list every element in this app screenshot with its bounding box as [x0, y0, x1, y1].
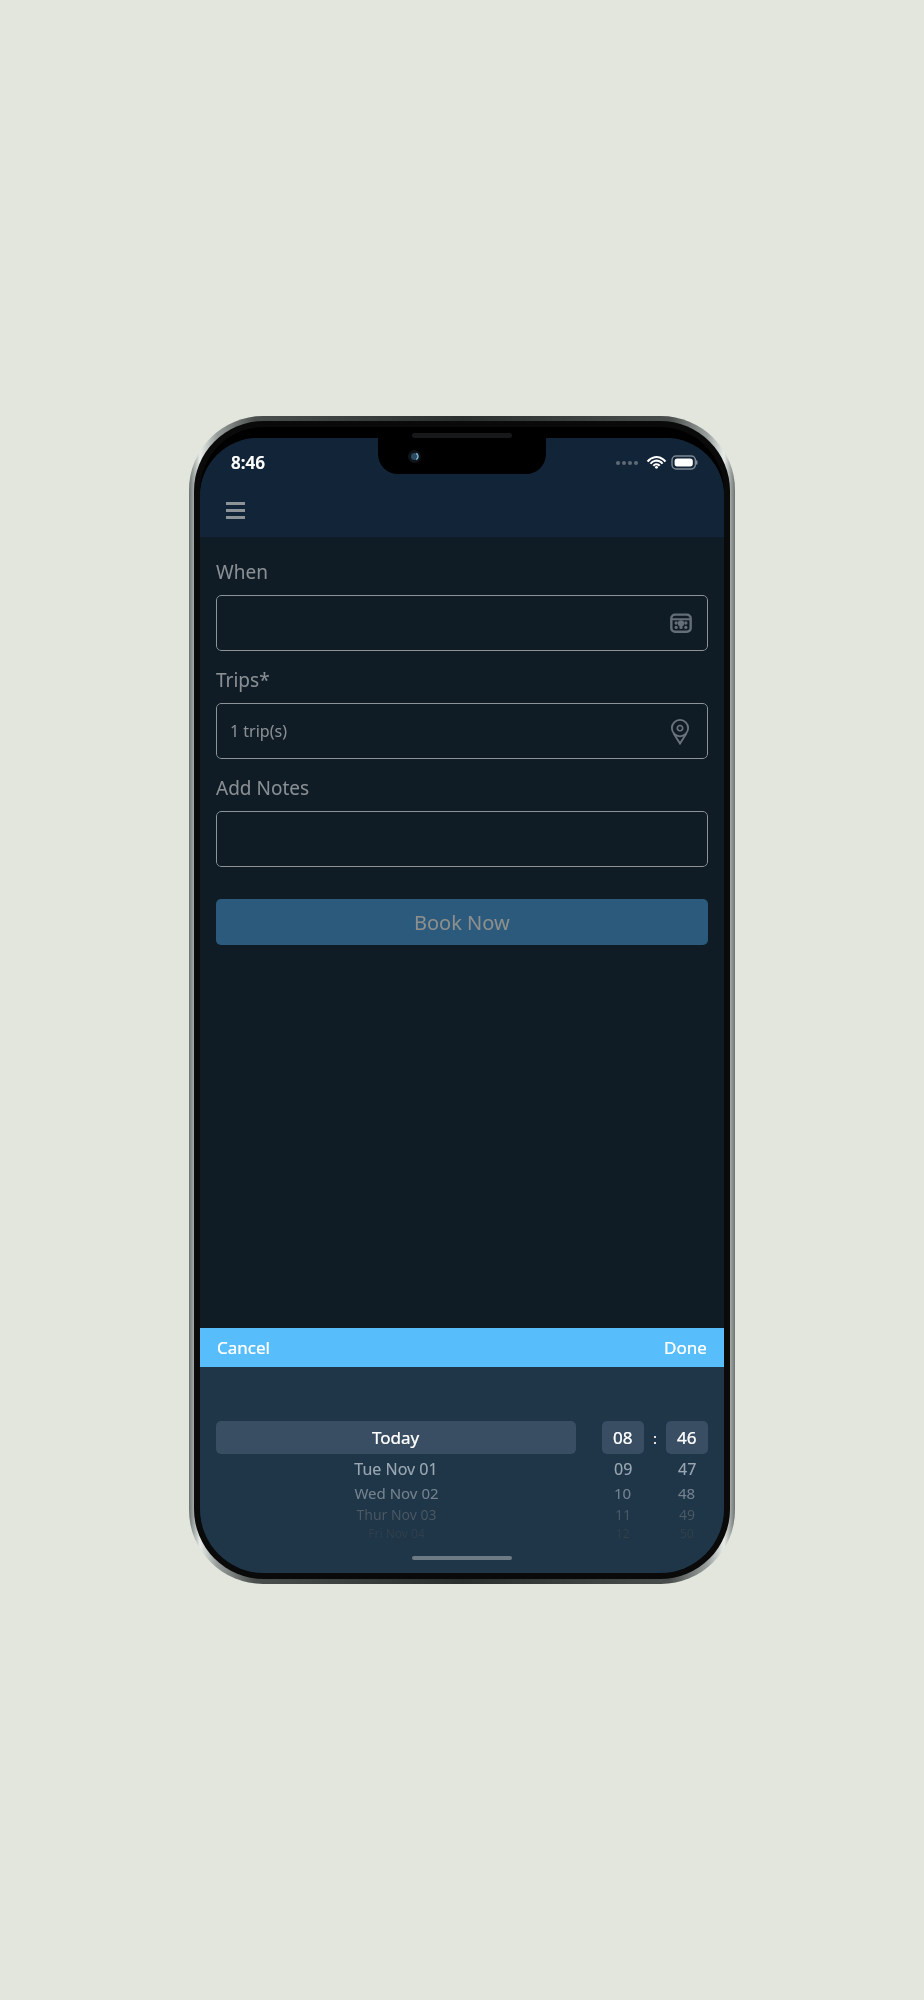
staticText: Fri Nov 04: [368, 1525, 425, 1541]
staticText: 46: [677, 1426, 697, 1449]
button[interactable]: Book Now: [216, 899, 708, 945]
staticText: 49: [679, 1505, 696, 1524]
staticText: 10: [614, 1483, 632, 1503]
staticText: Today: [372, 1426, 420, 1449]
staticText: When: [216, 559, 268, 585]
staticText: Cancel: [217, 1336, 270, 1359]
staticText: 50: [680, 1525, 694, 1541]
button[interactable]: Menu: [218, 493, 252, 527]
staticText: :: [653, 1428, 658, 1448]
staticText: 8:46: [231, 451, 265, 474]
staticText: Add Notes: [216, 775, 310, 801]
staticText: Done: [664, 1336, 707, 1359]
staticText: Wed Nov 02: [354, 1483, 439, 1503]
staticText: 1 trip(s): [230, 720, 287, 742]
other: Pick date: [670, 612, 692, 634]
staticText: Trips*: [216, 667, 270, 693]
button[interactable]: 46: [666, 1421, 708, 1454]
button[interactable]: 1 trip(s): [216, 703, 708, 759]
staticText: 47: [678, 1458, 697, 1480]
button[interactable]: Cancel: [200, 1328, 287, 1367]
button[interactable]: 08: [602, 1421, 644, 1454]
staticText: 09: [614, 1458, 633, 1480]
button[interactable]: Pick date: [216, 595, 708, 651]
staticText: 48: [678, 1483, 696, 1503]
button[interactable]: [216, 811, 708, 867]
staticText: 12: [616, 1525, 630, 1541]
staticText: Book Now: [414, 909, 510, 936]
staticText: Tue Nov 01: [354, 1458, 438, 1480]
staticText: 08: [613, 1426, 633, 1449]
staticText: Thur Nov 03: [356, 1505, 437, 1524]
other: Select location: [668, 719, 692, 743]
button[interactable]: Done: [647, 1328, 724, 1367]
staticText: 11: [615, 1505, 632, 1524]
button[interactable]: Today: [216, 1421, 576, 1454]
